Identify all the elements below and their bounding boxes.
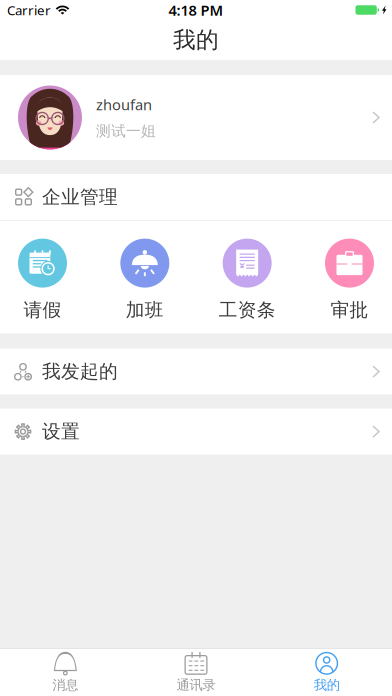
button[interactable]: 请假 <box>0 221 85 334</box>
button[interactable]: 加班 <box>102 221 187 334</box>
staticText: 通讯录 <box>176 677 215 693</box>
staticText: 审批 <box>330 299 368 321</box>
staticText: 我发起的 <box>42 360 118 383</box>
staticText: 我的 <box>314 677 340 693</box>
staticText: 设置 <box>42 420 80 443</box>
staticText: 消息 <box>52 677 78 693</box>
button[interactable]: zhoufan <box>0 75 392 160</box>
button[interactable]: 企业管理 <box>0 174 392 220</box>
button[interactable]: 我发起的 <box>0 349 392 395</box>
staticText: 测试一姐 <box>96 122 156 140</box>
staticText: 请假 <box>23 299 61 321</box>
staticText: zhoufan <box>96 95 152 114</box>
staticText: 加班 <box>126 299 164 321</box>
button[interactable]: 设置 <box>0 409 392 455</box>
staticText: 我的 <box>173 26 219 54</box>
button[interactable]: 通讯录 <box>131 649 261 696</box>
staticText: 工资条 <box>219 299 276 321</box>
staticText: 4:18 PM <box>168 0 223 20</box>
staticText: Carrier <box>7 1 51 19</box>
button[interactable]: 审批 <box>307 221 392 334</box>
button[interactable]: 消息 <box>0 649 131 696</box>
button[interactable]: 工资条 <box>205 221 290 334</box>
button[interactable]: 我的 <box>261 649 392 696</box>
staticText: 企业管理 <box>42 185 118 208</box>
